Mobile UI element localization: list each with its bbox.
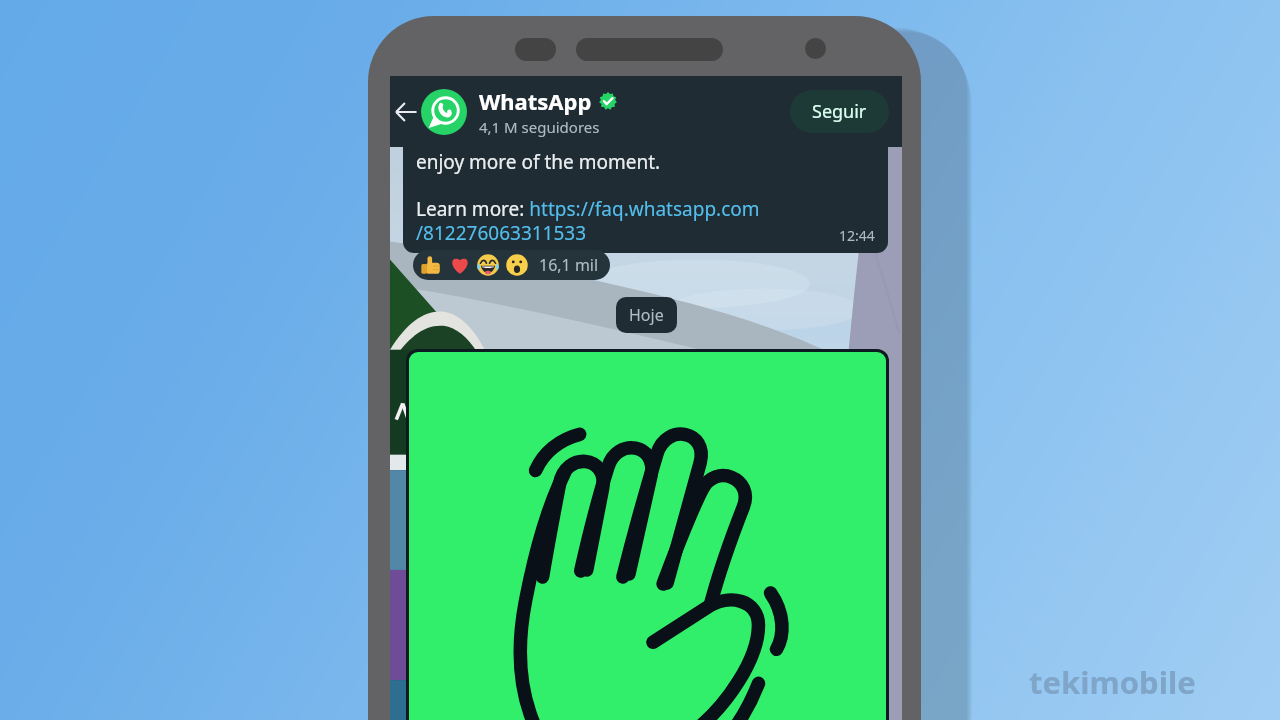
staticText: 4,1 M seguidores [479,117,600,137]
staticText: WhatsApp [479,86,592,116]
staticText: enjoy more of the moment. [416,149,661,175]
button[interactable]: 16,1 mil [413,250,610,280]
staticText: 12:44 [839,226,875,245]
button[interactable]: Channel avatar [421,89,467,135]
staticText: Hoje [629,304,664,326]
button[interactable]: Seguir [790,90,889,133]
button[interactable]: enjoy more of the moment. [403,147,888,253]
staticText: tekimobile [1029,661,1196,703]
button[interactable] [406,349,889,720]
staticText: 16,1 mil [539,254,599,276]
staticText: Seguir [812,99,867,124]
button[interactable]: Back [390,96,421,127]
button[interactable]: Hoje [616,297,677,333]
staticText: Learn more: https://faq.whatsapp.com /81… [416,196,760,245]
